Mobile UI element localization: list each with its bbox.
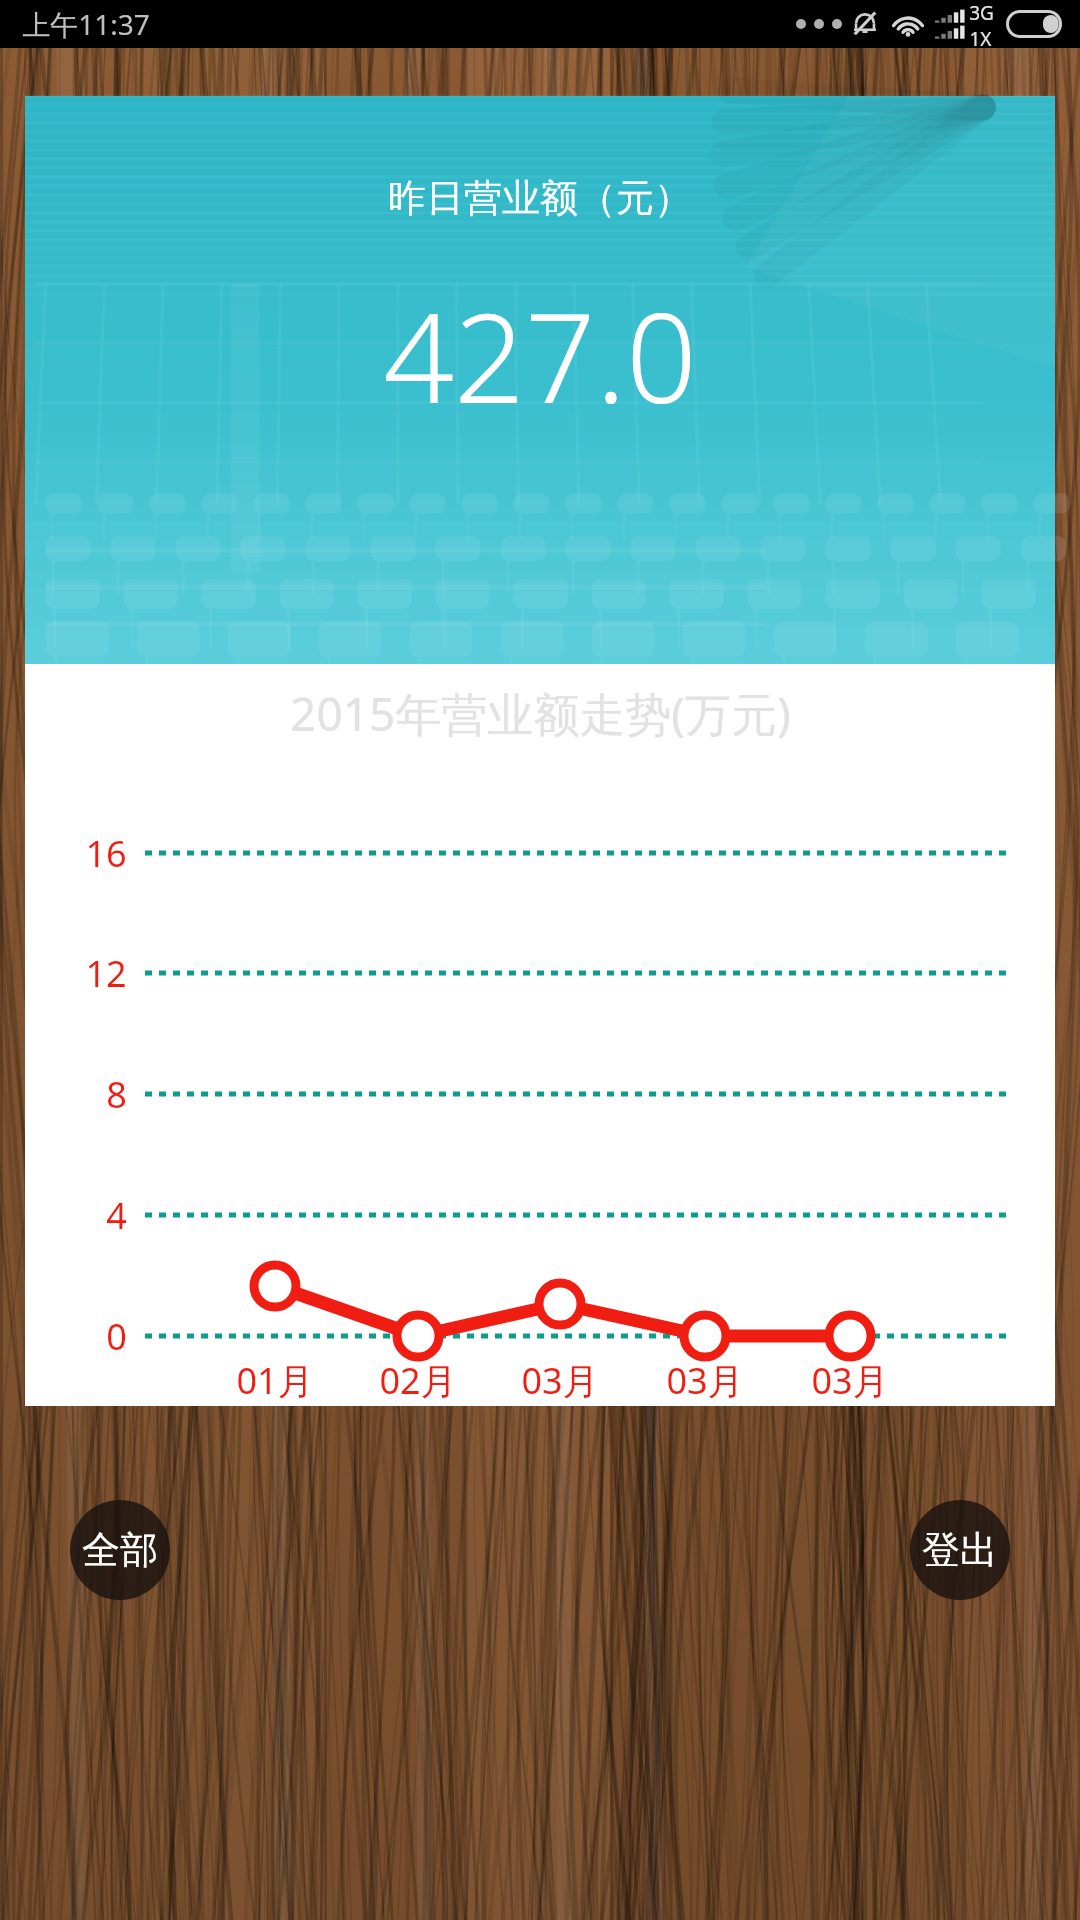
staticText: 全部 xyxy=(82,1526,158,1574)
staticText: 02月 xyxy=(379,1356,457,1405)
staticText: 0 xyxy=(106,1312,127,1361)
staticText: 03月 xyxy=(666,1356,744,1405)
staticText: 4 xyxy=(106,1191,127,1240)
staticText: 427.0 xyxy=(383,270,697,439)
button[interactable]: 全部 xyxy=(70,1500,170,1600)
button[interactable]: 登出 xyxy=(910,1500,1010,1600)
staticText: 2015年营业额走势(万元) xyxy=(290,682,791,745)
staticText: 上午11:37 xyxy=(22,5,150,43)
staticText: 12 xyxy=(85,949,127,998)
staticText: 3G xyxy=(969,0,994,26)
staticText: 8 xyxy=(106,1070,127,1119)
staticText: 03月 xyxy=(521,1356,599,1405)
staticText: 1X xyxy=(969,26,992,48)
staticText: 登出 xyxy=(922,1526,998,1574)
staticText: 03月 xyxy=(811,1356,889,1405)
staticText: 16 xyxy=(85,829,127,878)
staticText: 01月 xyxy=(236,1356,314,1405)
staticText: 昨日营业额（元） xyxy=(388,174,692,222)
